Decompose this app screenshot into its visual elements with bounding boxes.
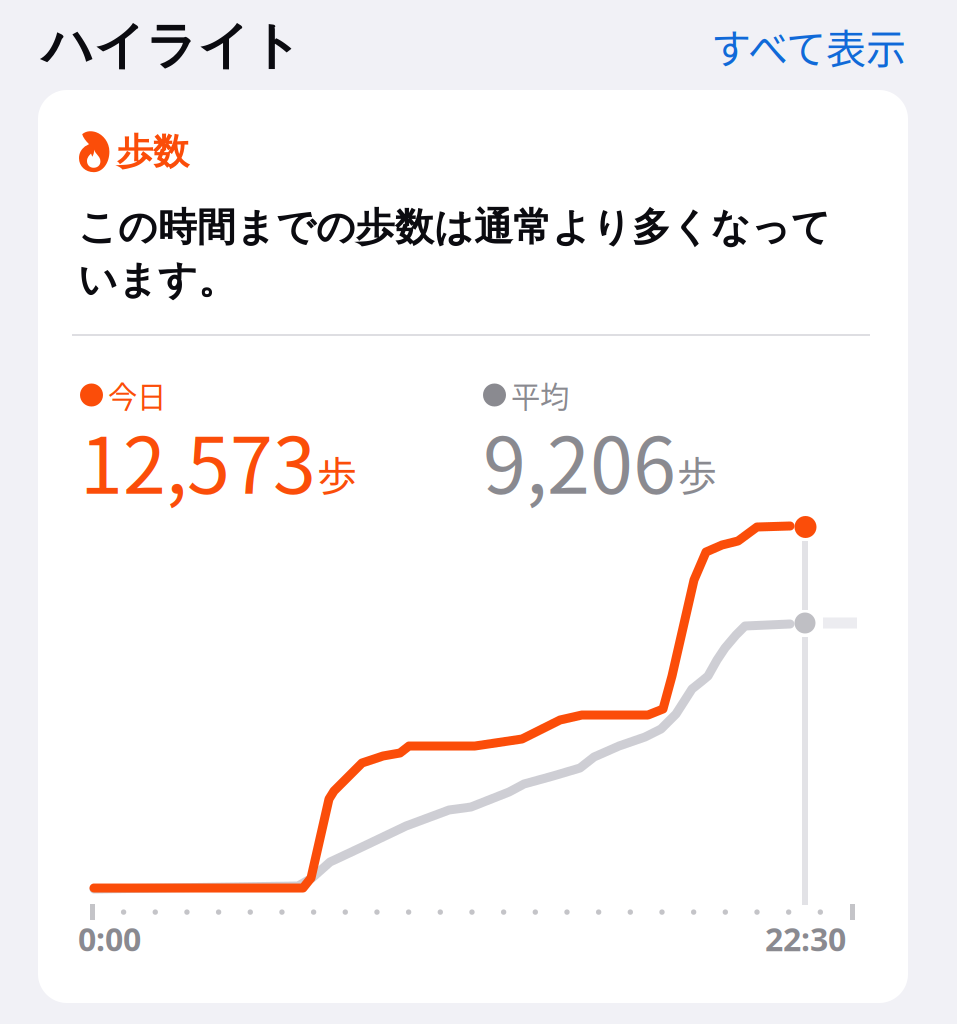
staticText: ハイライト — [42, 14, 302, 78]
staticText: 9,206 — [483, 404, 676, 516]
staticText: 0:00 — [78, 917, 141, 961]
staticText: 22:30 — [765, 917, 846, 961]
staticText: 12,573 — [80, 404, 316, 516]
staticText: この時間までの歩数は通常より多くなっています。 — [78, 203, 831, 304]
staticText: 歩数 — [117, 129, 189, 174]
staticText: すべて表示 — [711, 17, 906, 75]
button[interactable]: 歩数 — [38, 90, 908, 1003]
button[interactable]: ハイライト — [42, 14, 302, 78]
staticText: 歩 — [317, 444, 357, 502]
staticText: 歩 — [677, 444, 717, 502]
staticText: 今日 — [108, 374, 166, 416]
button[interactable]: すべて表示 — [711, 17, 906, 75]
staticText: 平均 — [511, 374, 569, 416]
